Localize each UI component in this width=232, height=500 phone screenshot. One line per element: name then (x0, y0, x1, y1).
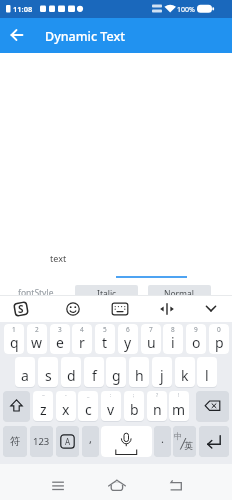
staticText: Italic (97, 288, 117, 300)
button[interactable]: g (106, 357, 126, 387)
button[interactable] (3, 391, 30, 421)
staticText: r (79, 333, 85, 352)
staticText: 符 (10, 435, 21, 448)
button[interactable]: 6 (118, 324, 138, 354)
staticText: d (67, 366, 76, 385)
button[interactable] (163, 473, 187, 497)
staticText: ~ (42, 392, 45, 399)
staticText: 英 (184, 440, 193, 451)
staticText: v (107, 400, 115, 419)
button[interactable] (156, 298, 178, 320)
staticText: h (135, 366, 144, 385)
button[interactable]: ! (169, 391, 189, 421)
button[interactable]: 2 (27, 324, 47, 354)
button[interactable]: k (175, 357, 195, 387)
staticText: 7 (149, 325, 153, 334)
staticText: u (147, 333, 156, 352)
staticText: : (110, 392, 112, 399)
staticText: Dynamic Text (45, 28, 125, 45)
button[interactable]: f (84, 357, 104, 387)
button[interactable] (196, 391, 229, 421)
staticText: o (192, 333, 201, 352)
staticText: 11:08 (13, 4, 33, 14)
staticText: ; (133, 392, 135, 399)
button[interactable]: ? (147, 391, 167, 421)
button[interactable]: Italic (75, 285, 138, 302)
staticText: 0 (217, 325, 221, 334)
staticText: e (56, 333, 64, 352)
staticText: b (130, 400, 139, 419)
staticText: 100% (177, 5, 195, 15)
staticText: g (112, 366, 121, 385)
button[interactable]: Normal (148, 285, 211, 302)
button[interactable]: ~ (33, 391, 53, 421)
staticText: q (10, 333, 19, 352)
staticText: ? (156, 392, 159, 399)
button[interactable] (200, 298, 222, 320)
button[interactable]: 5 (95, 324, 115, 354)
staticText: fontStyle (18, 287, 54, 299)
button[interactable]: _ (78, 391, 98, 421)
button[interactable]: - (56, 391, 76, 421)
button[interactable]: 8 (163, 324, 183, 354)
staticText: j (160, 366, 164, 385)
staticText: 9 (194, 325, 198, 334)
button[interactable]: ; (124, 391, 144, 421)
button[interactable]: 0 (209, 324, 229, 354)
button[interactable]: d (61, 357, 81, 387)
staticText: - (65, 392, 67, 399)
staticText: 2 (35, 325, 39, 334)
button[interactable]: A (56, 426, 79, 457)
staticText: l (205, 366, 209, 385)
button[interactable]: 4 (72, 324, 92, 354)
staticText: k (181, 366, 189, 385)
button[interactable]: a (15, 357, 35, 387)
staticText: 8 (171, 325, 175, 334)
staticText: 4 (80, 325, 84, 334)
staticText: 1 (12, 325, 16, 334)
staticText: _ (87, 392, 90, 399)
staticText: z (40, 400, 47, 419)
staticText: . (161, 431, 164, 446)
staticText: m (172, 400, 186, 419)
button[interactable]: 符 (3, 426, 27, 457)
button[interactable] (62, 298, 84, 320)
button[interactable] (10, 298, 32, 320)
staticText: ! (178, 392, 180, 399)
button[interactable]: 7 (141, 324, 161, 354)
button[interactable]: 123 (30, 426, 53, 457)
staticText: a (21, 366, 29, 385)
button[interactable]: . (154, 426, 171, 457)
button[interactable]: s (38, 357, 58, 387)
staticText: t (102, 333, 108, 352)
button[interactable] (101, 426, 152, 457)
staticText: , (89, 431, 92, 446)
button[interactable]: 9 (186, 324, 206, 354)
staticText: text (50, 252, 67, 264)
button[interactable]: 中 (173, 426, 196, 457)
staticText: 123 (33, 435, 50, 448)
staticText: y (124, 333, 132, 352)
button[interactable] (46, 473, 70, 497)
button[interactable]: j (152, 357, 172, 387)
button[interactable]: 3 (50, 324, 70, 354)
staticText: x (62, 400, 70, 419)
staticText: A (65, 436, 71, 447)
button[interactable]: 1 (4, 324, 24, 354)
staticText: 中 (174, 431, 183, 442)
button[interactable] (199, 426, 229, 457)
button[interactable] (6, 24, 28, 46)
staticText: n (153, 400, 162, 419)
staticText: s (45, 366, 52, 385)
button[interactable]: , (82, 426, 99, 457)
staticText: i (171, 333, 175, 352)
staticText: c (85, 400, 92, 419)
button[interactable]: l (197, 357, 217, 387)
staticText: w (31, 333, 43, 352)
button[interactable]: : (101, 391, 121, 421)
button[interactable] (104, 473, 128, 497)
staticText: S (18, 302, 24, 316)
staticText: 3 (58, 325, 62, 334)
button[interactable]: h (129, 357, 149, 387)
button[interactable] (109, 298, 131, 320)
